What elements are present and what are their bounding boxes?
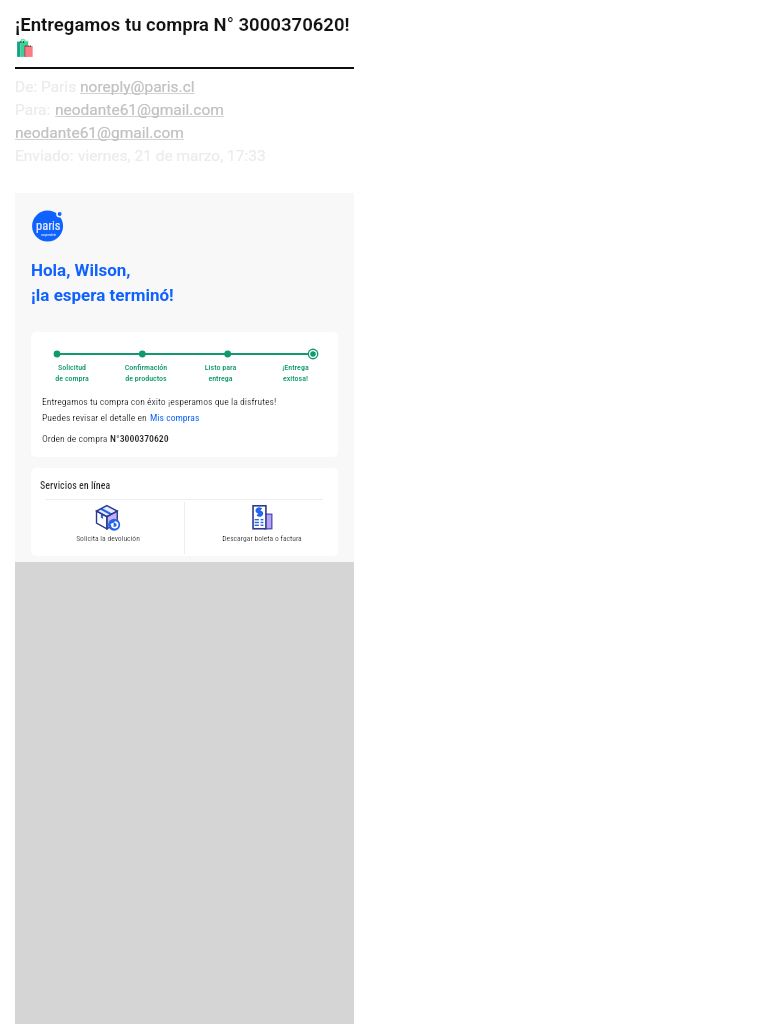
button[interactable]: Solicita la devolución [31,500,184,556]
staticText: ¡Entrega exitosa! [258,363,333,383]
staticText: ¡Entregamos tu compra N° 3000370620! [15,14,350,36]
staticText: ¡la espera terminó! [31,285,174,305]
staticText: Solicitud de compra [35,363,109,383]
button[interactable]: noreply@paris.cl [80,78,195,96]
staticText: Hola, Wilson, [31,260,131,280]
staticText: Confirmación de productos [109,363,183,383]
staticText: N°3000370620 [110,433,169,444]
button[interactable]: Mis compras [150,412,200,423]
staticText: viernes, 21 de marzo, 17:33 [78,147,266,165]
button[interactable]: neodante61@gmail.com [15,124,184,142]
staticText: Para: [15,101,55,119]
staticText: Servicios en línea [40,480,111,492]
staticText: sorprendete [41,233,57,237]
button[interactable]: neodante61@gmail.com [55,101,224,119]
staticText: Enviado: [15,147,78,165]
staticText: Descargar boleta o factura [222,534,302,543]
staticText: paris [36,218,61,233]
staticText: De: Paris [15,78,80,96]
staticText: Listo para entrega [183,363,258,383]
staticText: Orden de compra [42,433,110,444]
staticText: Puedes revisar el detalle en [42,412,150,423]
staticText: Entregamos tu compra con éxito ¡esperamo… [42,396,277,407]
staticText: Solicita la devolución [76,534,140,543]
button[interactable]: Descargar boleta o factura [185,500,338,556]
